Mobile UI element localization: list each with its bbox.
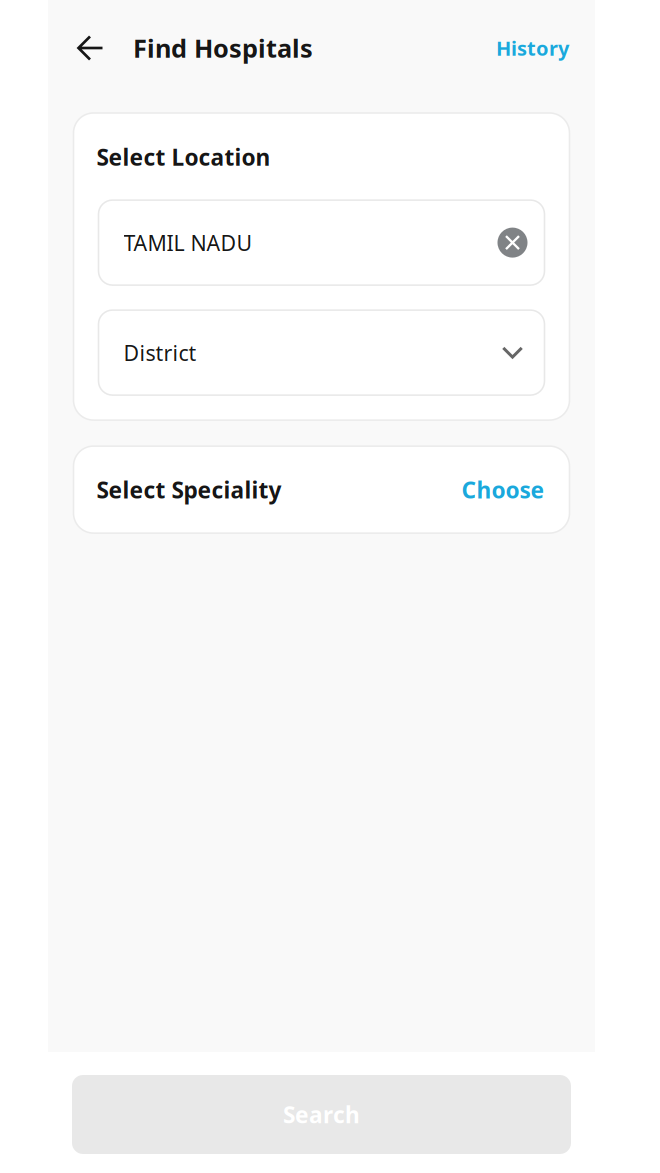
- staticText: Choose: [461, 475, 544, 505]
- button[interactable]: Back: [48, 0, 133, 96]
- button[interactable]: District: [98, 310, 544, 395]
- staticText: Select Speciality: [96, 475, 281, 505]
- staticText: Search: [283, 1099, 360, 1129]
- button[interactable]: History: [496, 0, 595, 96]
- staticText: History: [496, 35, 569, 61]
- button[interactable]: TAMIL NADU: [98, 200, 544, 285]
- button[interactable]: Select Speciality: [73, 446, 569, 533]
- staticText: Find Hospitals: [133, 31, 313, 65]
- staticText: TAMIL NADU: [123, 228, 252, 257]
- staticText: Select Location: [96, 142, 270, 172]
- staticText: District: [123, 338, 196, 367]
